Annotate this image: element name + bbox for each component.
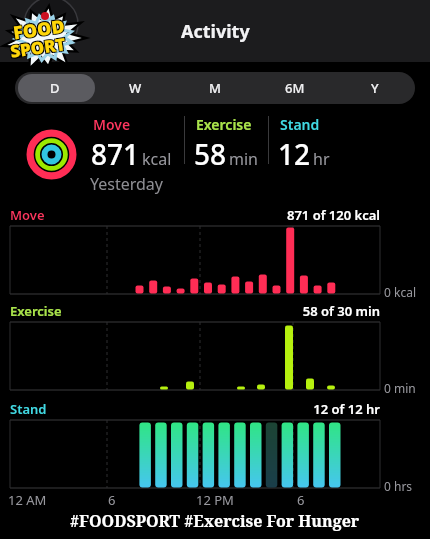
staticText: 6	[108, 491, 116, 509]
staticText: FOOD	[12, 12, 67, 44]
staticText: 58 of 30 min	[302, 302, 380, 320]
staticText: D	[50, 79, 60, 97]
staticText: FOOD	[13, 14, 68, 46]
staticText: 0 kcal	[384, 284, 416, 300]
staticText: SPORT	[10, 33, 68, 64]
staticText: Stand	[280, 115, 320, 134]
staticText: Exercise	[10, 302, 62, 320]
staticText: SPORT	[8, 33, 66, 64]
staticText: 58	[194, 135, 227, 173]
staticText: 12 PM	[196, 491, 234, 509]
staticText: Yesterday	[90, 173, 164, 195]
staticText: 0 hrs	[384, 478, 413, 494]
staticText: Y	[371, 79, 379, 97]
staticText: Stand	[10, 400, 47, 418]
staticText: #FOODSPORT #Exercise For Hunger	[70, 510, 360, 532]
staticText: SPORT	[9, 32, 67, 63]
staticText: hr	[313, 148, 330, 170]
staticText: 6M	[285, 79, 305, 97]
staticText: Activity	[181, 19, 250, 44]
staticText: 0 min	[384, 380, 416, 396]
staticText: FOOD	[11, 15, 66, 47]
staticText: SPORT	[7, 31, 66, 62]
button[interactable]: 6M	[255, 72, 335, 104]
staticText: 871	[91, 135, 140, 173]
staticText: Exercise	[196, 115, 252, 134]
staticText: W	[129, 79, 142, 97]
button[interactable]: W	[95, 72, 175, 104]
button[interactable]: M	[175, 72, 255, 104]
staticText: 12 AM	[8, 491, 47, 509]
staticText: kcal	[142, 148, 172, 170]
staticText: 12 of 12 hr	[313, 400, 380, 418]
staticText: SPORT	[9, 31, 68, 62]
staticText: min	[229, 148, 258, 170]
button[interactable]: FOOD	[2, 0, 92, 72]
staticText: FOOD	[10, 13, 65, 45]
staticText: 871 of 120 kcal	[286, 206, 380, 224]
staticText: Move	[93, 115, 131, 134]
staticText: 12	[278, 135, 311, 173]
staticText: M	[209, 79, 221, 97]
staticText: 6	[297, 491, 305, 509]
staticText: Move	[10, 206, 45, 224]
button[interactable]: Y	[335, 72, 415, 104]
staticText: FOOD	[11, 13, 66, 45]
button[interactable]: D	[15, 72, 95, 104]
